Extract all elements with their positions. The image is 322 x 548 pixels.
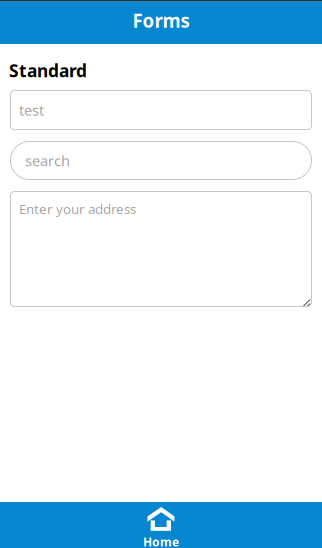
button[interactable]: Home (0, 502, 322, 548)
staticText: Standard (9, 59, 87, 82)
button[interactable]: Enter your address (10, 191, 312, 307)
staticText: test (19, 100, 44, 120)
staticText: search (25, 151, 70, 170)
button[interactable]: test (10, 90, 312, 130)
button[interactable]: search (10, 141, 312, 180)
staticText: Home (143, 534, 179, 548)
staticText: Enter your address (19, 200, 136, 218)
staticText: Forms (132, 8, 189, 33)
